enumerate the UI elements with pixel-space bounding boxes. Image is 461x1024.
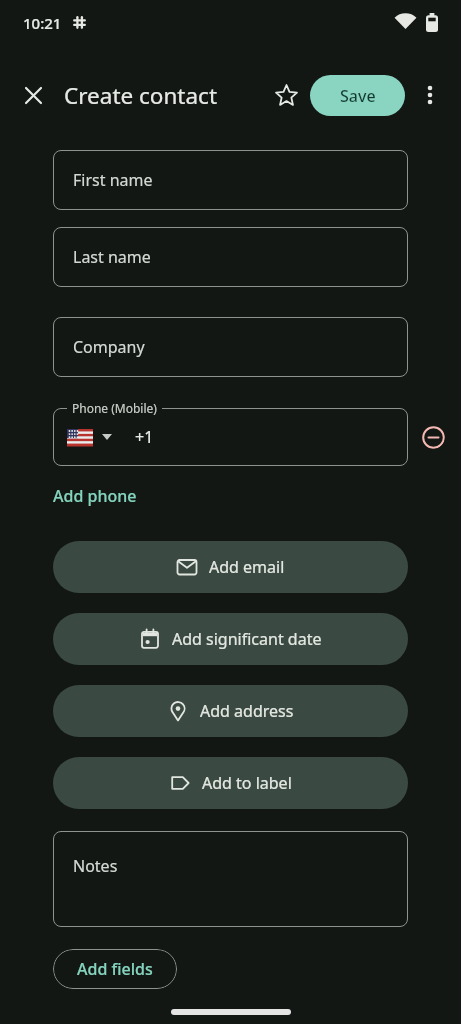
button[interactable]: [421, 425, 445, 449]
staticText: +1: [135, 426, 154, 448]
staticText: Save: [340, 85, 376, 107]
staticText: Phone (Mobile): [72, 400, 157, 416]
button[interactable]: Add address: [53, 685, 408, 737]
staticText: Company: [73, 336, 145, 358]
staticText: Add email: [209, 556, 285, 578]
staticText: Add significant date: [172, 628, 322, 650]
button[interactable]: Add fields: [53, 949, 177, 989]
button[interactable]: Add to label: [53, 757, 408, 809]
staticText: First name: [73, 169, 153, 191]
staticText: Add address: [200, 700, 294, 722]
staticText: Notes: [73, 855, 118, 877]
button[interactable]: [269, 78, 303, 112]
staticText: Last name: [73, 246, 151, 268]
button[interactable]: Last name: [53, 227, 408, 287]
staticText: 10:21: [23, 13, 62, 33]
staticText: Add fields: [77, 958, 153, 980]
button[interactable]: Notes: [53, 831, 408, 927]
button[interactable]: Add phone: [53, 485, 137, 507]
button[interactable]: [413, 78, 447, 112]
staticText: Create contact: [64, 80, 218, 111]
button[interactable]: Company: [53, 317, 408, 377]
button[interactable]: Add significant date: [53, 613, 408, 665]
button[interactable]: +1: [53, 408, 408, 466]
button[interactable]: First name: [53, 150, 408, 210]
button[interactable]: [16, 78, 50, 112]
staticText: Add to label: [202, 772, 292, 794]
button[interactable]: Add email: [53, 541, 408, 593]
button[interactable]: Save: [310, 75, 405, 116]
